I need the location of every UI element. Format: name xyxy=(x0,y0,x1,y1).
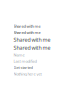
staticText: Shared with me xyxy=(13,44,50,51)
staticText: Get started xyxy=(13,65,32,70)
staticText: Shared with me xyxy=(13,36,50,43)
staticText: Last modified xyxy=(13,59,36,64)
staticText: Name xyxy=(13,52,24,58)
staticText: Shared with me xyxy=(13,23,40,29)
staticText: Shared with me xyxy=(13,30,40,35)
staticText: Nothing here yet xyxy=(13,71,41,76)
